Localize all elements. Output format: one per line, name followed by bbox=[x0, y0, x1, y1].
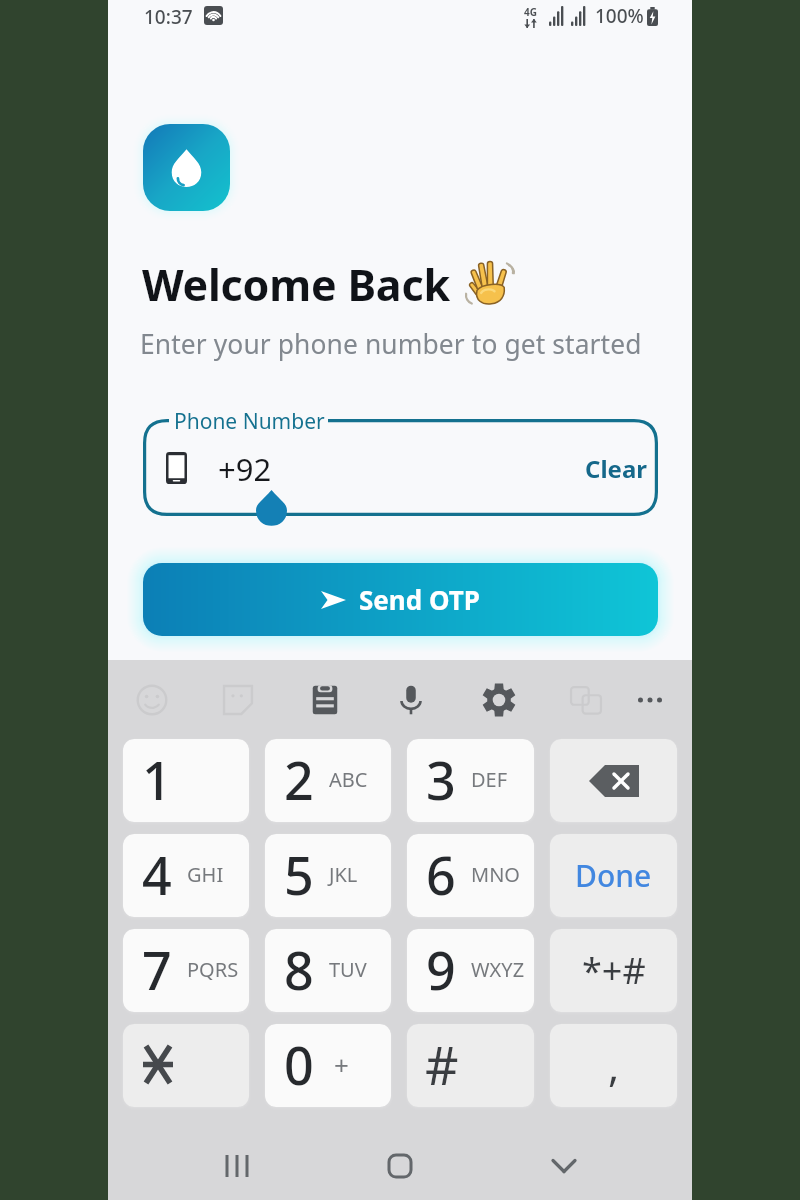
button[interactable]: 1 bbox=[123, 739, 249, 822]
staticText: 7 bbox=[142, 934, 172, 1005]
other: Star bbox=[143, 1046, 173, 1083]
button[interactable]: 9 bbox=[407, 929, 534, 1012]
button[interactable]: 8 bbox=[265, 929, 391, 1012]
staticText: *+# bbox=[582, 946, 646, 995]
button[interactable]: Clear bbox=[585, 452, 647, 485]
staticText: ABC bbox=[329, 766, 368, 793]
staticText: # bbox=[425, 1029, 459, 1100]
staticText: TUV bbox=[329, 956, 367, 983]
button[interactable]: *+# bbox=[550, 929, 677, 1012]
staticText: Send OTP bbox=[359, 582, 480, 617]
button[interactable]: Recents bbox=[213, 1139, 261, 1187]
staticText: + bbox=[334, 1047, 349, 1082]
staticText: Welcome Back bbox=[142, 255, 450, 314]
staticText: 3 bbox=[426, 744, 456, 815]
staticText: 4 bbox=[142, 839, 172, 910]
button[interactable]: , bbox=[550, 1024, 677, 1107]
staticText: Enter your phone number to get started bbox=[140, 326, 642, 362]
staticText: 5 bbox=[284, 839, 314, 910]
button[interactable]: Voice input bbox=[389, 678, 433, 722]
staticText: JKL bbox=[329, 861, 358, 888]
button[interactable]: Settings bbox=[477, 678, 521, 722]
button[interactable]: More options bbox=[628, 678, 672, 722]
button[interactable]: Send OTP bbox=[143, 563, 658, 636]
button[interactable]: 3 bbox=[407, 739, 534, 822]
staticText: Phone Number bbox=[174, 407, 325, 436]
staticText: DEF bbox=[471, 766, 508, 793]
button[interactable]: Star bbox=[123, 1024, 249, 1107]
staticText: WXYZ bbox=[471, 956, 525, 983]
staticText: 2 bbox=[284, 744, 314, 815]
staticText: 6 bbox=[426, 839, 456, 910]
staticText: 1 bbox=[142, 744, 172, 815]
button[interactable]: Backspace bbox=[550, 739, 677, 822]
button[interactable]: # bbox=[407, 1024, 534, 1107]
staticText: 0 bbox=[284, 1029, 314, 1100]
button[interactable]: 0 bbox=[265, 1024, 391, 1107]
button[interactable]: Hide keyboard bbox=[540, 1139, 588, 1187]
staticText: Clear bbox=[585, 452, 647, 485]
staticText: MNO bbox=[471, 861, 520, 888]
staticText: 4G bbox=[524, 5, 537, 19]
staticText: +92 bbox=[218, 448, 272, 490]
staticText: PQRS bbox=[187, 956, 239, 983]
button[interactable]: Emoji bbox=[130, 678, 174, 722]
other: Backspace bbox=[589, 765, 639, 797]
button[interactable]: 7 bbox=[123, 929, 249, 1012]
button[interactable]: App logo bbox=[143, 124, 230, 211]
staticText: 10:37 bbox=[144, 4, 193, 30]
button[interactable]: Stickers bbox=[216, 678, 260, 722]
staticText: , bbox=[608, 1037, 620, 1094]
button[interactable]: 2 bbox=[265, 739, 391, 822]
staticText: 100% bbox=[595, 3, 644, 29]
staticText: Done bbox=[575, 855, 652, 896]
button[interactable]: Translate bbox=[564, 678, 608, 722]
staticText: 8 bbox=[284, 934, 314, 1005]
button[interactable]: 5 bbox=[265, 834, 391, 917]
button[interactable]: 6 bbox=[407, 834, 534, 917]
button[interactable]: Home bbox=[376, 1139, 424, 1187]
staticText: 9 bbox=[426, 934, 456, 1005]
button[interactable]: Clipboard bbox=[303, 678, 347, 722]
staticText: GHI bbox=[187, 861, 224, 888]
button[interactable]: 4 bbox=[123, 834, 249, 917]
button[interactable]: Done bbox=[550, 834, 677, 917]
